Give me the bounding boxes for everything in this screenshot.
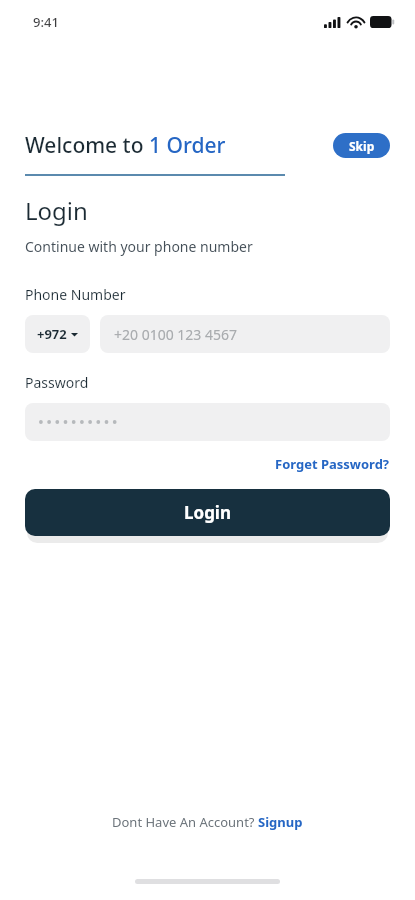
button[interactable] xyxy=(25,403,390,441)
staticText: Login xyxy=(25,194,88,227)
staticText: +20 0100 123 4567 xyxy=(114,325,238,344)
button[interactable]: +972 xyxy=(25,315,90,353)
staticText: Password xyxy=(25,373,89,392)
staticText: Skip xyxy=(349,138,375,154)
staticText: Continue with your phone number xyxy=(25,237,253,256)
staticText: +972 xyxy=(37,325,67,343)
staticText: Dont Have An Account? xyxy=(112,813,258,831)
staticText: 9:41 xyxy=(33,13,59,31)
staticText: 1 Order xyxy=(149,131,226,160)
staticText: Forget Password? xyxy=(275,455,390,473)
button[interactable]: Signup xyxy=(258,813,303,831)
button[interactable]: +20 0100 123 4567 xyxy=(100,315,390,353)
button[interactable]: Forget Password? xyxy=(275,455,390,473)
staticText: Login xyxy=(184,501,232,524)
staticText: Welcome to xyxy=(25,131,149,160)
button[interactable]: Login xyxy=(25,489,390,536)
button[interactable]: Skip xyxy=(333,133,390,158)
staticText: Phone Number xyxy=(25,285,126,304)
staticText: Signup xyxy=(258,813,303,831)
